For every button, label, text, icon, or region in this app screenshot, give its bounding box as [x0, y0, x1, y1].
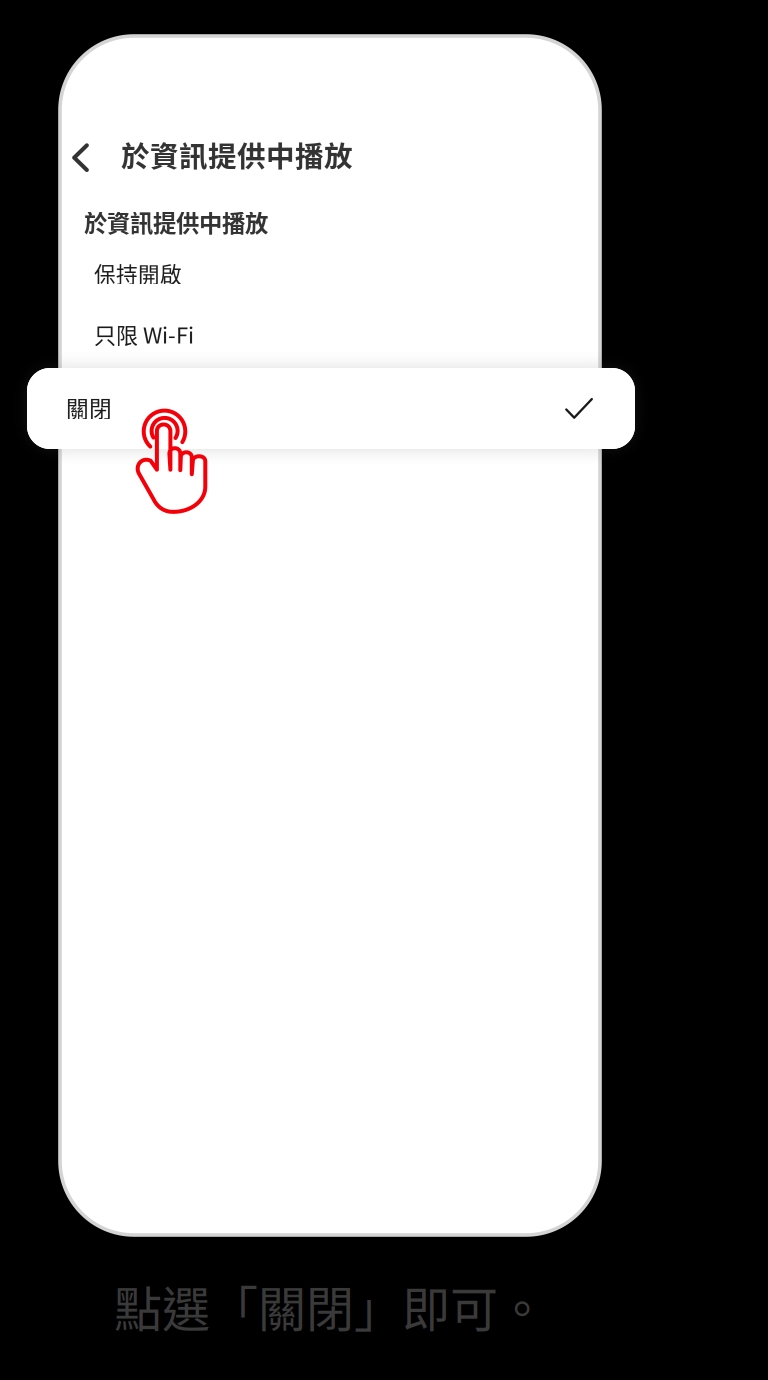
button[interactable]: 於資訊提供中播放: [60, 36, 600, 1235]
staticText: 保持開啟: [94, 257, 182, 289]
staticText: 於資訊提供中播放: [84, 205, 268, 239]
button[interactable]: 保持開啟: [60, 228, 600, 284]
button[interactable]: 關閉: [27, 368, 635, 449]
staticText: 於資訊提供中播放: [121, 134, 353, 175]
button[interactable]: 只限 Wi-Fi: [60, 289, 600, 345]
staticText: 只限 Wi-Fi: [94, 318, 194, 350]
staticText: 點選「關閉」即可。: [114, 1271, 546, 1340]
staticText: 關閉: [66, 391, 112, 424]
